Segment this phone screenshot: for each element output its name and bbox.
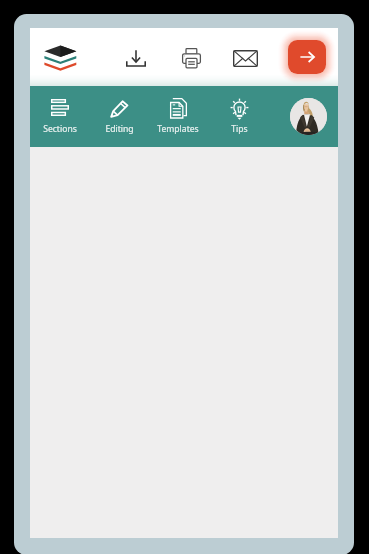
button[interactable]: Profile — [290, 98, 327, 135]
staticText: Tips — [231, 123, 248, 135]
button[interactable]: Tips — [210, 97, 268, 137]
button[interactable]: Print — [176, 43, 206, 73]
button[interactable]: Email — [230, 43, 260, 73]
button[interactable]: Templates — [149, 97, 207, 137]
staticText: Templates — [157, 123, 199, 135]
staticText: Sections — [43, 123, 77, 135]
staticText: Editing — [105, 123, 134, 135]
button[interactable]: Editing — [90, 97, 148, 137]
button[interactable]: Layers — [42, 38, 80, 76]
button[interactable]: Sections — [31, 97, 89, 137]
button[interactable]: Download — [121, 43, 151, 73]
button[interactable]: Next — [288, 40, 326, 74]
